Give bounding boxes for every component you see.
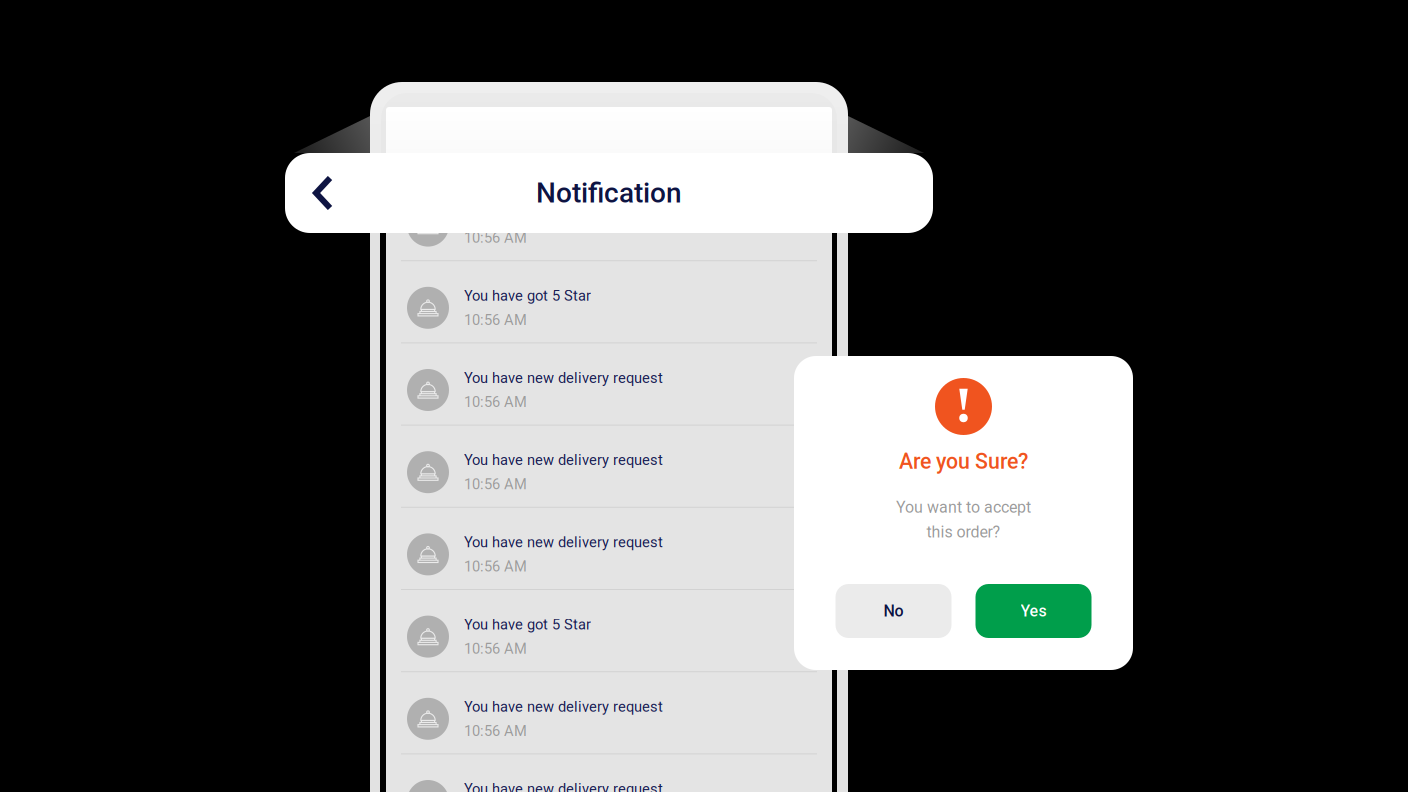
staticText: You have new delivery request	[464, 534, 663, 551]
button[interactable]: You have got 5 Star	[386, 261, 832, 343]
button[interactable]: You have got 5 Star	[386, 590, 832, 672]
button[interactable]: You have new delivery request	[386, 179, 832, 261]
button[interactable]: No	[835, 584, 951, 638]
staticText: this order?	[926, 523, 1000, 541]
staticText: You have new delivery request	[464, 698, 663, 715]
button[interactable]: You have new delivery request	[386, 508, 832, 590]
button[interactable]: You have new delivery request	[386, 672, 832, 754]
staticText: 10:56 AM	[464, 311, 527, 328]
staticText: 10:56 AM	[464, 229, 527, 246]
button[interactable]: You have new delivery request	[386, 426, 832, 508]
button[interactable]: Yes	[975, 584, 1091, 638]
staticText: You have got 5 Star	[464, 287, 591, 304]
staticText: You have new delivery request	[464, 369, 663, 386]
button[interactable]: You have new delivery request	[386, 754, 832, 792]
staticText: You want to accept	[896, 498, 1031, 517]
staticText: 10:56 AM	[464, 476, 527, 493]
staticText: Yes	[1020, 602, 1046, 620]
staticText: 10:56 AM	[464, 722, 527, 739]
button[interactable]: You have new delivery request	[386, 343, 832, 426]
staticText: You have got 5 Star	[464, 616, 591, 633]
staticText: You have new delivery request	[464, 451, 663, 469]
button[interactable]: Back	[285, 153, 361, 233]
staticText: Notification	[536, 177, 682, 209]
staticText: 10:56 AM	[464, 640, 527, 657]
staticText: 10:56 AM	[464, 393, 527, 411]
staticText: 10:56 AM	[464, 558, 527, 575]
staticText: You have new delivery request	[464, 780, 663, 792]
staticText: Are you Sure?	[899, 449, 1028, 474]
staticText: No	[883, 602, 903, 620]
